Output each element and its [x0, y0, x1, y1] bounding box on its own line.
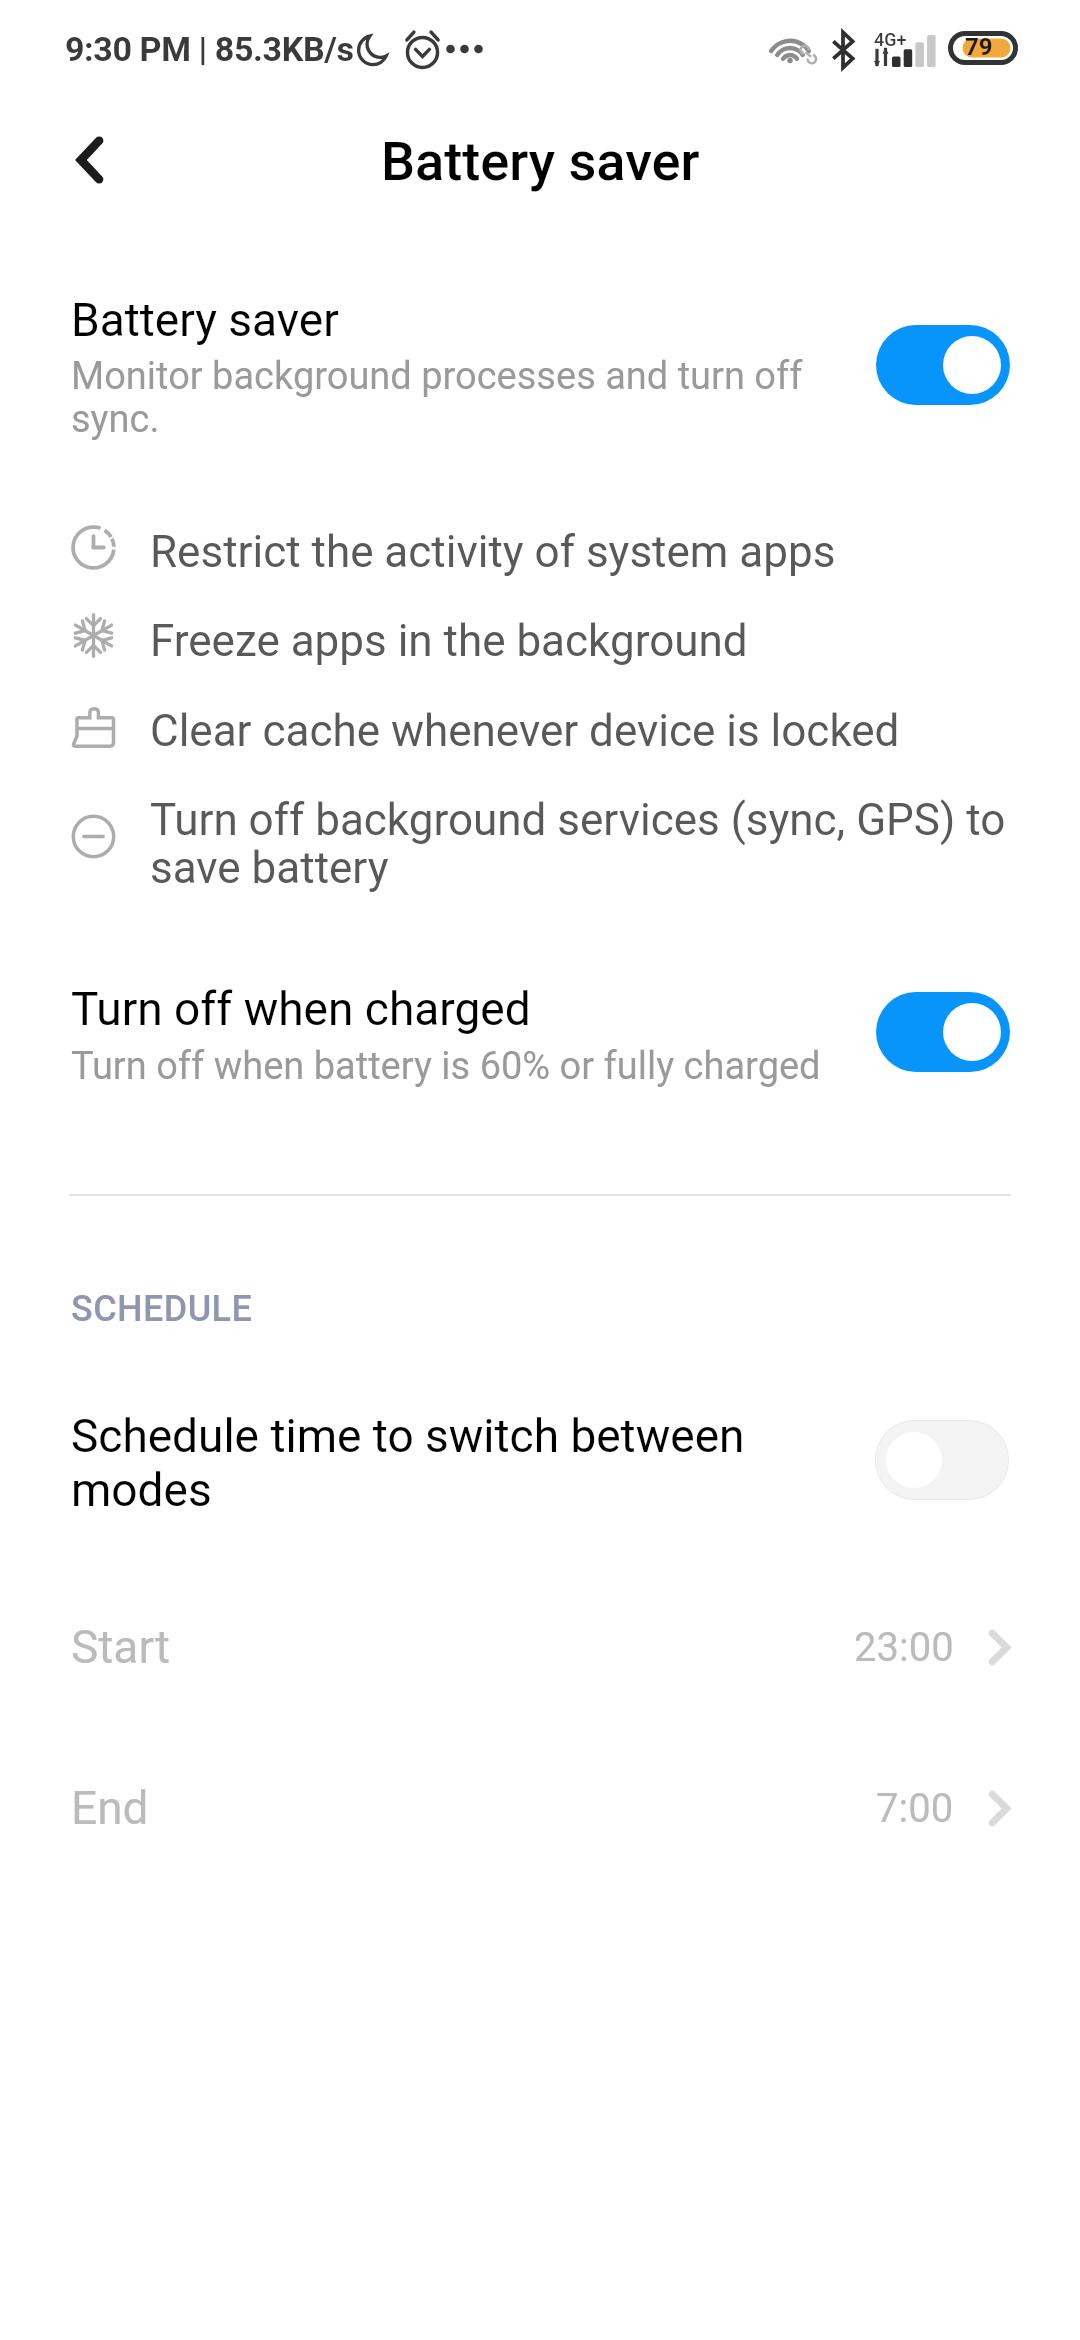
staticText: Schedule time to switch between modes	[71, 1409, 771, 1517]
button[interactable]: Turn off when charged	[0, 955, 1080, 1115]
button[interactable]: Back	[45, 115, 135, 205]
button[interactable]: Switch on	[876, 992, 1010, 1072]
button[interactable]: Freeze apps in the background	[0, 597, 1080, 685]
staticText: 7:00	[876, 1785, 954, 1832]
staticText: Restrict the activity of system apps	[150, 526, 836, 578]
button[interactable]: End	[0, 1753, 1080, 1863]
staticText: Battery saver	[381, 130, 700, 193]
staticText: Turn off when charged	[71, 982, 531, 1036]
staticText: Battery saver	[71, 293, 339, 347]
staticText: Start	[71, 1620, 171, 1674]
button[interactable]: Restrict the activity of system apps	[0, 508, 1080, 596]
staticText: 79	[965, 33, 993, 61]
staticText: End	[71, 1781, 149, 1835]
button[interactable]: Battery saver	[0, 268, 1080, 474]
staticText: SCHEDULE	[71, 1288, 253, 1330]
staticText: 4G+	[874, 29, 907, 50]
button[interactable]: Turn off background services (sync, GPS)…	[0, 774, 1080, 914]
button[interactable]: Switch off	[875, 1420, 1009, 1500]
button[interactable]: Switch on	[876, 325, 1010, 405]
staticText: Monitor background processes and turn of…	[71, 354, 816, 441]
staticText: Turn off when battery is 60% or fully ch…	[71, 1044, 821, 1089]
button[interactable]: Schedule time to switch between modes	[0, 1384, 1080, 1554]
button[interactable]: Clear cache whenever device is locked	[0, 687, 1080, 775]
staticText: Turn off background services (sync, GPS)…	[150, 794, 1006, 894]
staticText: Clear cache whenever device is locked	[150, 705, 900, 757]
button[interactable]: Start	[0, 1592, 1080, 1702]
staticText: 23:00	[854, 1624, 954, 1671]
staticText: Freeze apps in the background	[150, 615, 748, 667]
staticText: 9:30 PM | 85.3KB/s	[65, 29, 354, 69]
